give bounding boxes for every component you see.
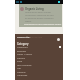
staticText: Life (17, 67, 21, 70)
staticText: Tech Trending (17, 64, 32, 67)
staticText: Adventure (17, 46, 28, 49)
button[interactable]: Back to top (57, 38, 60, 41)
staticText: Lifestyle (17, 71, 26, 74)
button[interactable]: Language (17, 74, 28, 77)
button[interactable]: Tech Trending (17, 64, 32, 67)
button[interactable]: Lifestyle (17, 71, 26, 74)
button[interactable]: Subscribe now (29, 36, 42, 39)
staticText: Food (17, 60, 23, 63)
button[interactable]: Travel + Sports (17, 53, 33, 56)
button[interactable]: Life (17, 67, 21, 70)
button[interactable]: Fashion (17, 57, 26, 60)
staticText: Business (17, 50, 27, 53)
staticText: Travel + Sports (17, 53, 33, 56)
staticText: Organic Living (25, 7, 44, 11)
staticText: Subscribe to our newsletter today (24, 23, 62, 26)
staticText: Subscribe now (29, 36, 42, 39)
button[interactable]: Business (17, 50, 27, 53)
staticText: Newsletter (17, 35, 31, 38)
staticText: Lorem ipsum dolor sit amet consectetur a… (25, 11, 54, 23)
staticText: Fashion (17, 57, 26, 60)
button[interactable]: Subscribe to our newsletter today (24, 23, 62, 26)
staticText: Language (17, 74, 28, 77)
button[interactable]: Food (17, 60, 23, 63)
button[interactable]: Adventure (17, 46, 28, 49)
staticText: Category (17, 42, 29, 45)
